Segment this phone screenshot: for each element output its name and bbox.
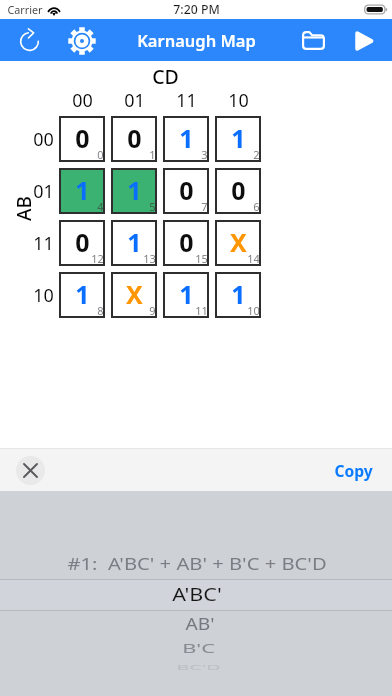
staticText: 10 (247, 303, 260, 318)
button[interactable]: 0 (163, 168, 209, 214)
staticText: 12 (91, 251, 104, 266)
staticText: 0 (75, 121, 90, 155)
staticText: 0 (97, 147, 104, 162)
button[interactable]: 1 (163, 272, 209, 318)
button[interactable]: 1 (59, 168, 105, 214)
staticText: 10 (33, 283, 54, 308)
staticText: A'BC' (172, 581, 222, 606)
button[interactable]: Close (16, 456, 45, 485)
staticText: 11 (33, 231, 54, 256)
staticText: 1 (149, 147, 156, 162)
staticText: Copy (334, 460, 373, 481)
staticText: 01 (124, 88, 145, 113)
staticText: 1 (75, 173, 90, 207)
staticText: 1 (127, 225, 142, 259)
staticText: 00 (33, 127, 54, 152)
staticText: 11 (176, 88, 197, 113)
staticText: CD (152, 63, 179, 90)
staticText: 11 (195, 303, 208, 318)
staticText: 1 (179, 277, 194, 311)
button[interactable]: Run (345, 21, 384, 60)
button[interactable]: 1 (111, 220, 157, 266)
staticText: 0 (179, 225, 194, 259)
button[interactable]: Redo (10, 21, 49, 60)
button[interactable]: X (111, 272, 157, 318)
staticText: 1 (231, 121, 246, 155)
staticText: 3 (201, 147, 208, 162)
staticText: 7 (201, 199, 208, 214)
button[interactable]: Settings (62, 21, 101, 60)
button[interactable]: 1 (59, 272, 105, 318)
button[interactable]: X (215, 220, 261, 266)
staticText: 01 (33, 179, 54, 204)
staticText: 1 (231, 277, 246, 311)
button[interactable]: Copy (334, 460, 373, 481)
staticText: 0 (231, 173, 246, 207)
staticText: 1 (179, 121, 194, 155)
staticText: 14 (247, 251, 260, 266)
button[interactable]: 0 (59, 116, 105, 162)
staticText: 7:20 PM (173, 1, 220, 18)
staticText: 5 (149, 199, 156, 214)
button[interactable]: 1 (215, 272, 261, 318)
button[interactable]: 0 (163, 220, 209, 266)
button[interactable]: Open file (294, 21, 333, 60)
staticText: 0 (179, 173, 194, 207)
staticText: 9 (149, 303, 156, 318)
staticText: 13 (143, 251, 156, 266)
staticText: 0 (75, 225, 90, 259)
staticText: BC'D (176, 662, 221, 672)
button[interactable]: 1 (215, 116, 261, 162)
staticText: 2 (253, 147, 260, 162)
button[interactable]: 0 (111, 116, 157, 162)
staticText: 10 (228, 88, 249, 113)
staticText: 1 (127, 173, 142, 207)
staticText: X (126, 277, 143, 311)
staticText: 6 (253, 199, 260, 214)
staticText: 15 (195, 251, 208, 266)
staticText: 1 (75, 277, 90, 311)
staticText: 8 (97, 303, 104, 318)
staticText: 00 (72, 88, 93, 113)
button[interactable]: 1 (163, 116, 209, 162)
staticText: Carrier (7, 2, 43, 17)
staticText: #1: A'BC' + AB' + B'C + BC'D (67, 551, 327, 575)
staticText: Karnaugh Map (137, 29, 256, 51)
staticText: B'C (182, 639, 215, 657)
staticText: 4 (97, 199, 104, 214)
staticText: X (230, 225, 247, 259)
staticText: AB (11, 196, 37, 221)
button[interactable]: 0 (59, 220, 105, 266)
button[interactable]: 1 (111, 168, 157, 214)
button[interactable]: 0 (215, 168, 261, 214)
staticText: AB' (185, 612, 215, 634)
staticText: 0 (127, 121, 142, 155)
